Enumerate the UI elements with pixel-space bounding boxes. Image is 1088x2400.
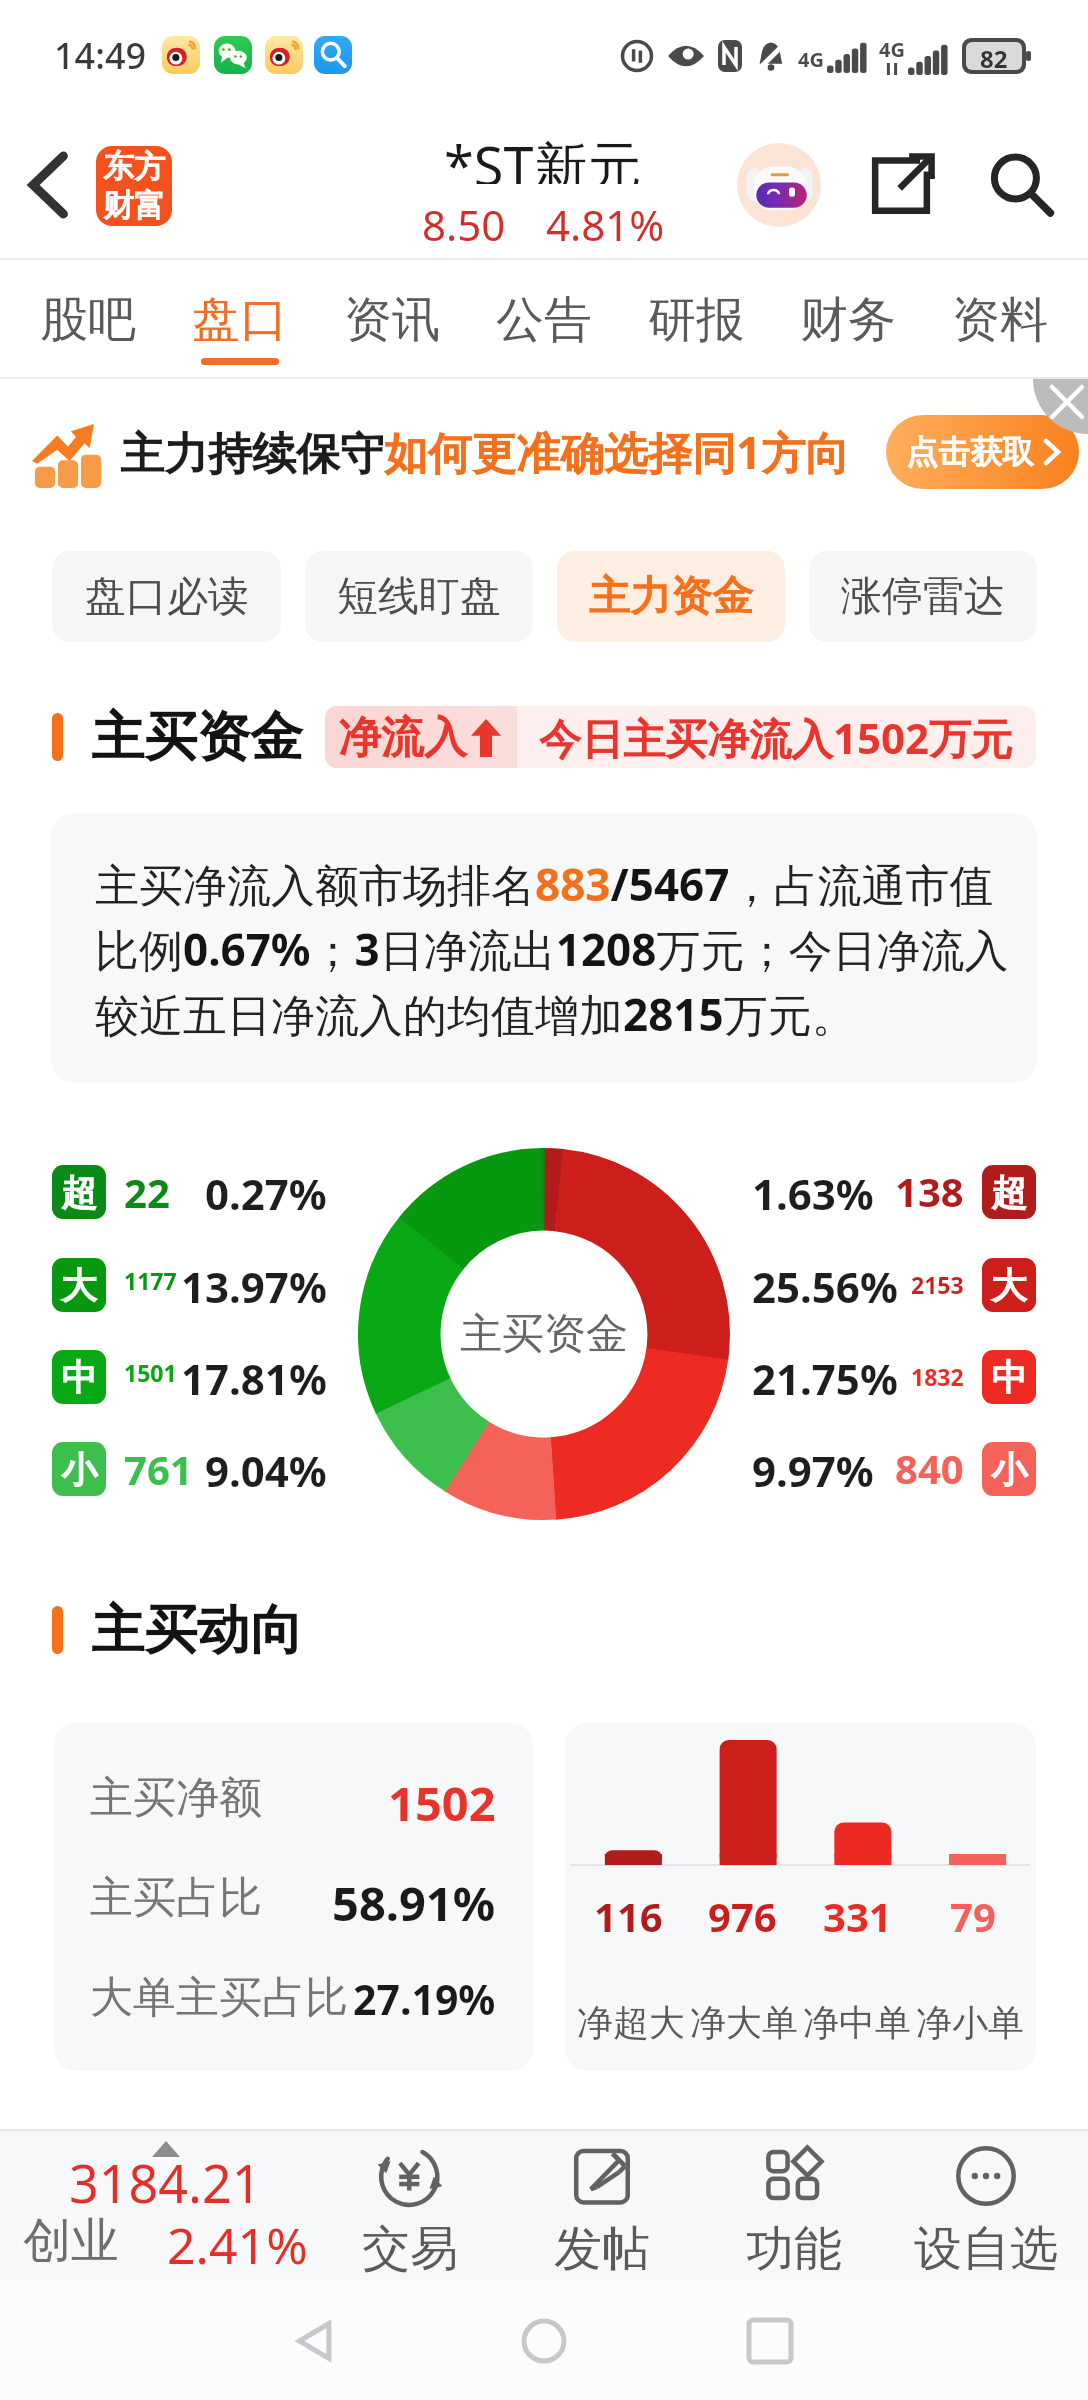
staticText: 小	[61, 1447, 97, 1492]
staticText: 大	[61, 1263, 97, 1308]
staticText: 27.19%	[353, 1971, 496, 2023]
button[interactable]: 资料	[946, 260, 1054, 379]
button[interactable]: Share	[862, 146, 940, 224]
staticText: 主力持续保守如何更准确选择同1方向	[120, 422, 850, 482]
staticText: 财务	[800, 290, 896, 350]
staticText: 创业	[23, 2211, 119, 2265]
button[interactable]: 盘口	[186, 260, 294, 379]
staticText: 主买占比	[90, 1871, 262, 1923]
staticText: 功能	[746, 2219, 842, 2273]
button[interactable]: 设自选	[890, 2129, 1082, 2281]
staticText: 0.27%	[205, 1165, 327, 1219]
button[interactable]: Recents	[744, 2315, 796, 2367]
staticText: 盘口	[192, 290, 288, 350]
button[interactable]: 116	[565, 1723, 1036, 2071]
staticText: 短线盯盘	[337, 571, 501, 623]
staticText: 840	[895, 1441, 964, 1495]
staticText: 资料	[952, 290, 1048, 350]
button[interactable]: 功能	[698, 2129, 890, 2281]
staticText: 116	[594, 1889, 663, 1943]
staticText: 976	[708, 1889, 777, 1943]
staticText: 超	[61, 1170, 97, 1215]
staticText: 净流入	[338, 711, 467, 765]
staticText: 4G	[879, 36, 905, 63]
staticText: 8.50	[422, 196, 506, 242]
staticText: 79	[950, 1889, 996, 1943]
staticText: 主买净额	[90, 1771, 262, 1823]
staticText: 1501	[124, 1357, 177, 1388]
button[interactable]: 交易	[314, 2129, 506, 2281]
button[interactable]: 财务	[794, 260, 902, 379]
button[interactable]: AI assistant	[736, 142, 822, 228]
staticText: 发帖	[554, 2219, 650, 2273]
button[interactable]: 涨停雷达	[809, 551, 1037, 642]
staticText: 净小单	[916, 2000, 1024, 2045]
staticText: 4G	[798, 46, 824, 73]
staticText: 净大单	[690, 2000, 798, 2045]
staticText: *ST新元	[444, 128, 642, 184]
staticText: 小	[991, 1447, 1027, 1492]
staticText: 主力资金	[589, 571, 753, 623]
staticText: 财富	[103, 186, 165, 225]
staticText: 主买资金	[460, 1308, 628, 1361]
staticText: 交易	[362, 2219, 458, 2273]
staticText: 超	[991, 1170, 1027, 1215]
staticText: 17.81%	[181, 1350, 327, 1404]
button[interactable]: 资讯	[338, 260, 446, 379]
staticText: 1502	[388, 1771, 496, 1823]
staticText: 14:49	[54, 31, 147, 80]
button[interactable]: 短线盯盘	[305, 551, 533, 642]
staticText: 设自选	[914, 2219, 1058, 2273]
staticText: 1.63%	[752, 1165, 874, 1219]
button[interactable]: 主买净额	[54, 1723, 533, 2071]
staticText: 761	[124, 1442, 193, 1496]
staticText: 58.91%	[332, 1871, 496, 1923]
button[interactable]: Close	[1033, 379, 1088, 434]
staticText: 主买资金	[91, 704, 303, 771]
button[interactable]: 主力资金	[557, 551, 785, 642]
staticText: 2153	[911, 1269, 964, 1300]
button[interactable]: 3184.21	[0, 2129, 330, 2281]
button[interactable]: Home	[518, 2315, 570, 2367]
staticText: 9.97%	[752, 1442, 874, 1496]
staticText: 主买动向	[91, 1597, 303, 1664]
button[interactable]: Back	[290, 2315, 342, 2367]
button[interactable]: Search	[982, 146, 1060, 224]
button[interactable]: 公告	[490, 260, 598, 379]
button[interactable]: 点击获取	[886, 415, 1079, 489]
staticText: 25.56%	[752, 1258, 898, 1312]
staticText: 3184.21	[69, 2147, 262, 2205]
staticText: 9.04%	[205, 1442, 327, 1496]
staticText: 中	[61, 1355, 97, 1400]
button[interactable]: 主买净流入额市场排名883/5467，占流通市值 比例0.67%；3日净流出12…	[51, 814, 1037, 1082]
staticText: 13.97%	[181, 1258, 327, 1312]
staticText: 21.75%	[752, 1350, 898, 1404]
button[interactable]: 盘口必读	[52, 551, 281, 642]
staticText: 138	[895, 1164, 964, 1218]
staticText: 中	[991, 1355, 1027, 1400]
staticText: 公告	[496, 290, 592, 350]
staticText: 1177	[124, 1265, 177, 1296]
staticText: 4.81%	[546, 196, 665, 242]
button[interactable]: 发帖	[506, 2129, 698, 2281]
staticText: 大	[991, 1263, 1027, 1308]
staticText: 东方	[103, 147, 165, 186]
staticText: 研报	[648, 290, 744, 350]
staticText: 大单主买占比	[90, 1971, 348, 2023]
staticText: 82	[980, 42, 1008, 70]
staticText: 今日主买净流入1502万元	[539, 709, 1014, 766]
button[interactable]: 研报	[642, 260, 750, 379]
staticText: 2.41%	[167, 2211, 308, 2265]
staticText: 股吧	[40, 290, 136, 350]
button[interactable]: Back	[7, 143, 91, 227]
button[interactable]: 东方	[96, 146, 172, 226]
button[interactable]: 股吧	[34, 260, 142, 379]
staticText: 资讯	[344, 290, 440, 350]
staticText: 1832	[911, 1361, 964, 1392]
staticText: 净超大	[577, 2000, 685, 2045]
button[interactable]: 主力持续保守如何更准确选择同1方向	[0, 379, 1088, 525]
staticText: 331	[823, 1889, 892, 1943]
staticText: 点击获取	[906, 432, 1034, 472]
staticText: 22	[124, 1165, 170, 1219]
staticText: 盘口必读	[85, 571, 249, 623]
